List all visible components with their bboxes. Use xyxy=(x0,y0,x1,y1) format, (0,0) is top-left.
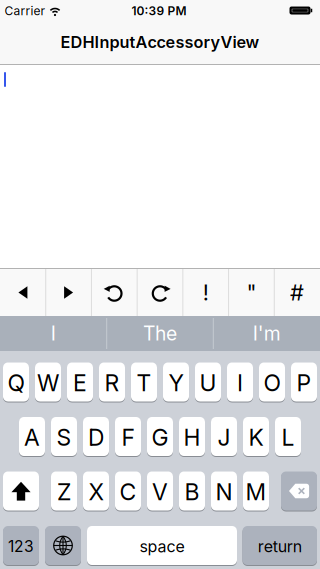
button[interactable]: D xyxy=(83,417,109,457)
button[interactable]: T xyxy=(131,362,157,402)
staticText: V xyxy=(152,478,168,506)
staticText: Z xyxy=(57,478,71,506)
staticText: Q xyxy=(7,369,24,397)
button[interactable]: The xyxy=(108,316,212,351)
button[interactable]: S xyxy=(51,417,77,457)
staticText: Carrier xyxy=(4,4,45,18)
button[interactable] xyxy=(46,269,91,316)
staticText: I xyxy=(237,369,243,397)
staticText: 123 xyxy=(8,537,34,556)
staticText: G xyxy=(151,423,168,451)
button[interactable]: Q xyxy=(3,362,29,402)
button[interactable]: N xyxy=(211,471,237,511)
button[interactable]: Z xyxy=(51,471,77,511)
button[interactable]: return xyxy=(242,526,317,566)
button[interactable]: W xyxy=(35,362,61,402)
staticText: D xyxy=(88,423,104,451)
button[interactable]: space xyxy=(87,526,237,566)
button[interactable]: Y xyxy=(163,362,189,402)
staticText: J xyxy=(217,423,230,451)
staticText: O xyxy=(263,369,280,397)
staticText: F xyxy=(121,423,134,451)
button[interactable]: J xyxy=(211,417,237,457)
button[interactable]: U xyxy=(195,362,221,402)
button[interactable] xyxy=(91,269,137,316)
staticText: " xyxy=(246,279,256,306)
button[interactable] xyxy=(3,471,39,511)
staticText: M xyxy=(245,478,266,506)
staticText: space xyxy=(139,537,184,556)
button[interactable] xyxy=(281,471,317,511)
button[interactable]: ! xyxy=(183,269,228,316)
button[interactable] xyxy=(45,526,81,566)
button[interactable]: C xyxy=(115,471,141,511)
staticText: A xyxy=(24,423,40,451)
button[interactable]: R xyxy=(99,362,125,402)
button[interactable]: H xyxy=(179,417,205,457)
staticText: C xyxy=(119,478,136,506)
button[interactable] xyxy=(0,269,46,316)
button[interactable]: I xyxy=(1,316,105,351)
staticText: L xyxy=(281,423,294,451)
staticText: 10:39 PM xyxy=(131,4,186,18)
staticText: R xyxy=(104,369,119,397)
button[interactable]: I xyxy=(227,362,253,402)
staticText: The xyxy=(143,322,177,345)
button[interactable]: I'm xyxy=(215,316,319,351)
button[interactable]: L xyxy=(275,417,301,457)
staticText: U xyxy=(199,369,216,397)
staticText: H xyxy=(183,423,200,451)
button[interactable]: F xyxy=(115,417,141,457)
button[interactable]: K xyxy=(243,417,269,457)
staticText: S xyxy=(56,423,71,451)
button[interactable]: E xyxy=(67,362,93,402)
button[interactable]: M xyxy=(243,471,269,511)
staticText: I xyxy=(51,322,56,345)
button[interactable]: O xyxy=(259,362,285,402)
staticText: ! xyxy=(203,279,209,306)
button[interactable]: V xyxy=(147,471,173,511)
button[interactable]: # xyxy=(274,269,320,316)
button[interactable]: B xyxy=(179,471,205,511)
staticText: K xyxy=(248,423,263,451)
button[interactable]: 123 xyxy=(3,526,39,566)
button[interactable]: X xyxy=(83,471,109,511)
staticText: Y xyxy=(168,369,183,397)
staticText: T xyxy=(136,369,151,397)
staticText: EDHInputAccessoryView xyxy=(60,32,259,52)
button[interactable]: A xyxy=(19,417,45,457)
staticText: # xyxy=(290,279,304,306)
staticText: B xyxy=(184,478,199,506)
staticText: E xyxy=(73,369,87,397)
button[interactable]: " xyxy=(229,269,274,316)
staticText: P xyxy=(296,369,311,397)
button[interactable] xyxy=(137,269,183,316)
button[interactable]: G xyxy=(147,417,173,457)
staticText: I'm xyxy=(253,322,281,345)
staticText: N xyxy=(215,478,232,506)
button[interactable]: P xyxy=(291,362,317,402)
staticText: X xyxy=(88,478,103,506)
staticText: W xyxy=(37,369,59,397)
staticText: return xyxy=(258,537,302,556)
